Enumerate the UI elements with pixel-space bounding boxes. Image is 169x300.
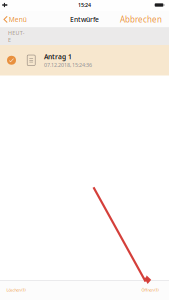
button[interactable]: Öffnen (1): [138, 284, 161, 296]
staticText: HEUTE: [8, 29, 25, 44]
staticText: Löschen (1): [6, 287, 25, 293]
button[interactable]: Menü: [0, 12, 31, 27]
staticText: Antrag 1: [44, 52, 72, 61]
staticText: 07.12.2018, 15:24:36: [44, 61, 92, 68]
staticText: Abbrechen: [120, 14, 162, 25]
staticText: Entwürfe: [70, 15, 99, 24]
button[interactable]: Abbrechen: [116, 11, 169, 28]
staticText: 15:24: [78, 1, 91, 9]
staticText: Öffnen (1): [141, 287, 158, 293]
button[interactable]: Antrag 1: [0, 45, 169, 75]
staticText: Menü: [9, 15, 27, 24]
button[interactable]: Löschen (1): [3, 284, 28, 296]
